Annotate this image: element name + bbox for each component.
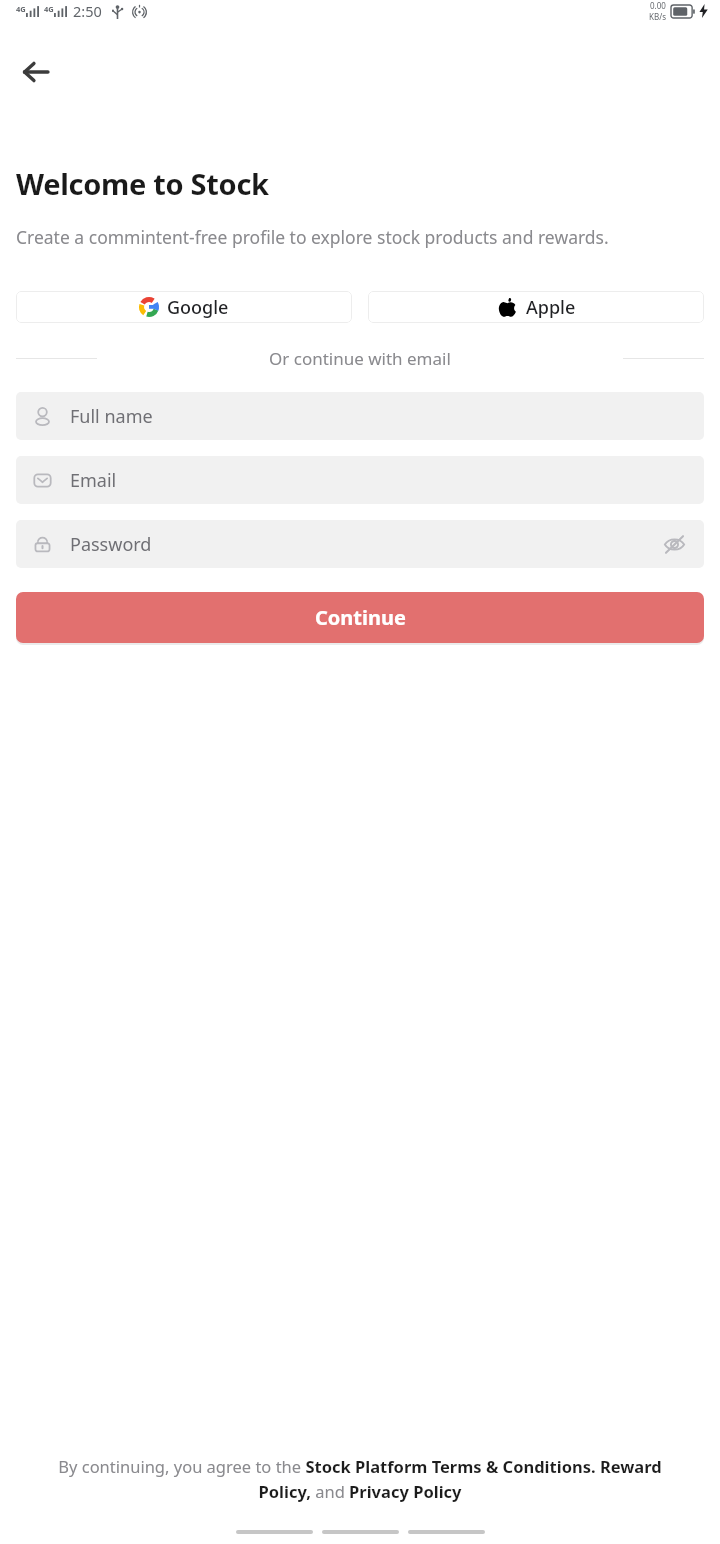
staticText: Create a commintent-free profile to expl… (16, 225, 609, 249)
staticText: Apple (526, 295, 576, 320)
staticText: Continue (315, 604, 406, 631)
staticText: Password (70, 532, 152, 557)
staticText: Email (70, 468, 117, 493)
button[interactable]: Apple (368, 291, 704, 323)
staticText: 0.00 (650, 0, 666, 11)
button[interactable]: Navigation 2 (322, 1530, 399, 1534)
staticText: Or continue with email (269, 347, 451, 370)
button[interactable]: Back (12, 48, 60, 96)
staticText: Full name (70, 404, 153, 429)
button[interactable]: Show password (657, 527, 691, 561)
button[interactable]: Navigation 3 (408, 1530, 485, 1534)
button[interactable]: Full name (16, 392, 704, 440)
staticText: Welcome to Stock (16, 164, 269, 203)
staticText: 2:50 (73, 1, 102, 21)
button[interactable]: Navigation 1 (236, 1530, 313, 1534)
button[interactable]: By continuing, you agree to the Stock Pl… (30, 1455, 690, 1502)
staticText: 4G (16, 4, 26, 14)
button[interactable]: Continue (16, 592, 704, 643)
staticText: 4G (44, 4, 54, 14)
button[interactable]: Password (16, 520, 704, 568)
button[interactable]: Google (16, 291, 352, 323)
staticText: Google (167, 295, 229, 320)
button[interactable]: Email (16, 456, 704, 504)
staticText: KB/s (649, 11, 666, 22)
staticText: By continuing, you agree to the Stock Pl… (30, 1455, 690, 1502)
